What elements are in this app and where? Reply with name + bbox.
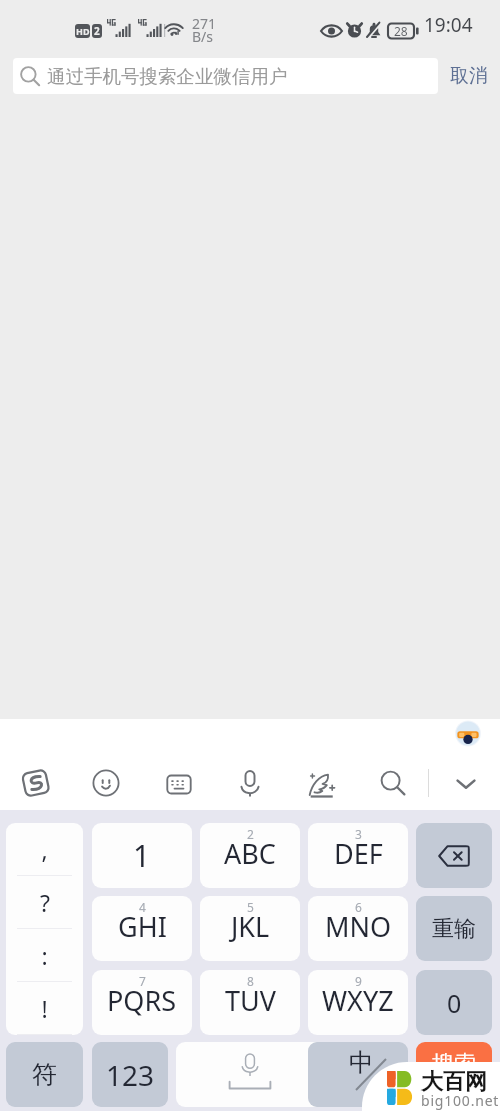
staticText: ABC — [224, 835, 276, 872]
staticText: HD — [76, 25, 90, 37]
button[interactable]: 4 — [92, 896, 192, 961]
button[interactable]: 1 — [92, 823, 192, 888]
staticText: GHI — [118, 908, 167, 945]
staticText: 大百网 — [421, 1068, 487, 1096]
button[interactable]: 7 — [92, 970, 192, 1035]
staticText: 271 — [192, 14, 217, 33]
button[interactable]: Search — [372, 762, 414, 804]
button[interactable]: Voice input — [229, 762, 271, 804]
staticText: 8 — [247, 973, 254, 989]
button[interactable]: Keyboard layout — [158, 762, 200, 804]
button[interactable]: 3 — [308, 823, 408, 888]
button[interactable]: 5 — [200, 896, 300, 961]
staticText: 通过手机号搜索企业微信用户 — [47, 65, 288, 88]
staticText: WXYZ — [322, 982, 394, 1019]
staticText: 重输 — [432, 915, 476, 943]
staticText: ! — [41, 993, 48, 1024]
button[interactable]: Hide keyboard — [445, 762, 487, 804]
staticText: 19:04 — [424, 12, 473, 38]
staticText: 取消 — [450, 64, 488, 88]
button[interactable]: 取消 — [446, 58, 492, 94]
button[interactable]: 8 — [200, 970, 300, 1035]
button[interactable]: 9 — [308, 970, 408, 1035]
staticText: 2 — [247, 826, 254, 842]
staticText: 7 — [139, 973, 146, 989]
button[interactable]: 重输 — [416, 896, 492, 961]
staticText: 2 — [94, 24, 100, 38]
staticText: ? — [40, 887, 50, 918]
staticText: , — [41, 834, 48, 865]
staticText: 6 — [355, 899, 362, 915]
button[interactable]: 搜索 — [416, 1042, 492, 1107]
button[interactable]: 6 — [308, 896, 408, 961]
staticText: TUV — [225, 982, 276, 1019]
staticText: 1 — [133, 835, 151, 876]
button[interactable]: 123 — [92, 1042, 168, 1107]
staticText: : — [41, 940, 48, 971]
button[interactable]: Emoji — [85, 762, 127, 804]
button[interactable]: , — [6, 823, 83, 1035]
button[interactable]: 0 — [416, 970, 492, 1035]
staticText: MNO — [325, 908, 392, 945]
button[interactable]: Space — [176, 1042, 324, 1107]
button[interactable]: Sogou input — [15, 762, 57, 804]
button[interactable]: Chinese / English — [308, 1042, 408, 1107]
staticText: 4 — [139, 899, 146, 915]
staticText: big100.net — [421, 1091, 500, 1110]
staticText: PQRS — [107, 982, 177, 1019]
button[interactable]: 2 — [200, 823, 300, 888]
staticText: JKL — [231, 908, 270, 945]
button[interactable]: Sticker — [455, 720, 481, 747]
staticText: 符 — [32, 1059, 57, 1090]
staticText: 0 — [447, 986, 462, 1020]
staticText: 9 — [355, 973, 362, 989]
staticText: 5 — [247, 899, 254, 915]
button[interactable]: 通过手机号搜索企业微信用户 — [13, 58, 438, 94]
staticText: 123 — [106, 1056, 155, 1094]
button[interactable]: Handwriting — [301, 762, 343, 804]
staticText: 搜索 — [432, 1050, 476, 1078]
staticText: 3 — [355, 826, 362, 842]
button[interactable]: 符 — [6, 1042, 83, 1107]
staticText: 中 — [349, 1047, 374, 1078]
staticText: DEF — [334, 835, 383, 872]
staticText: B/s — [192, 27, 214, 46]
staticText: 28 — [394, 23, 408, 38]
button[interactable]: Backspace — [416, 823, 492, 888]
